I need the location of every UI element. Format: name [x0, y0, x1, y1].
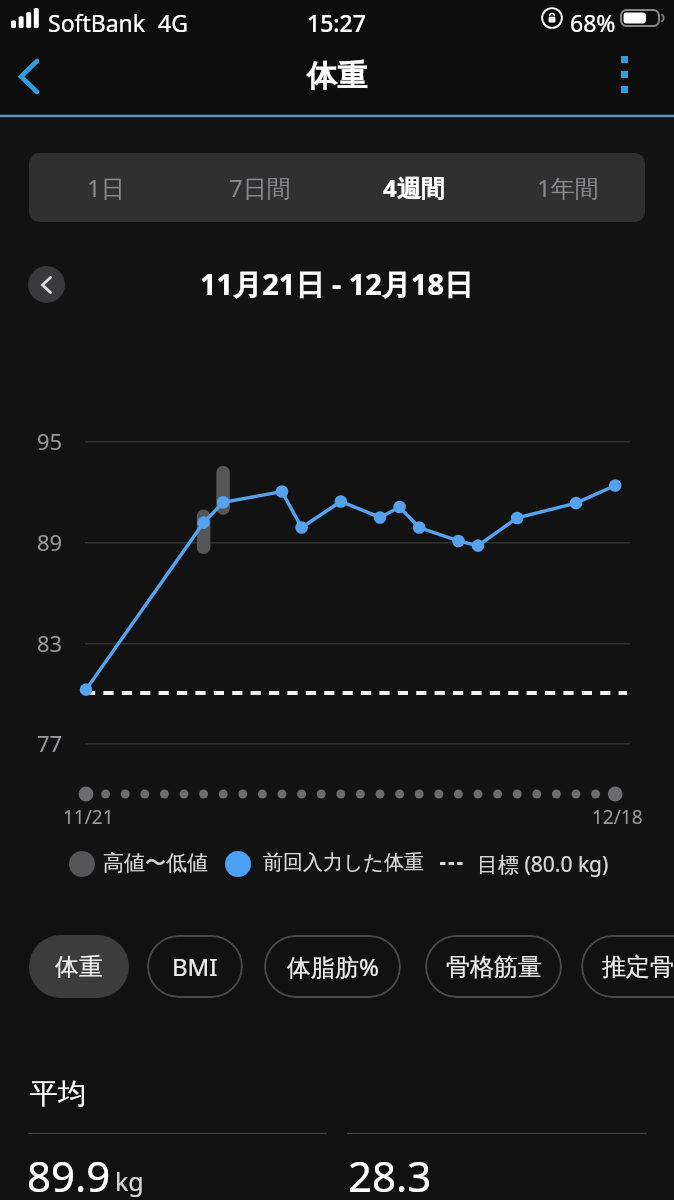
button[interactable]: 体重	[29, 935, 129, 998]
staticText: 体脂肪%	[287, 950, 379, 983]
staticText: 体重	[307, 57, 367, 95]
staticText: BMI	[172, 950, 218, 983]
staticText: 4G	[158, 7, 188, 38]
staticText: 11/21	[63, 804, 114, 830]
staticText: 骨格筋量	[446, 952, 542, 982]
staticText: 目標 (80.0 kg)	[477, 850, 609, 879]
staticText: 1日	[87, 171, 125, 204]
staticText: 12/18	[592, 804, 643, 830]
button[interactable]: Previous period	[28, 266, 65, 303]
staticText: kg	[115, 1164, 144, 1198]
staticText: 89.9	[27, 1147, 111, 1200]
staticText: 高値〜低値	[103, 850, 208, 876]
staticText: 平均	[30, 1076, 86, 1111]
button[interactable]: 1日	[29, 153, 183, 222]
button[interactable]: More options	[595, 45, 653, 103]
staticText: 83	[37, 628, 63, 658]
button[interactable]: 推定骨量	[581, 935, 674, 998]
staticText: 推定骨量	[602, 952, 674, 982]
staticText: 11月21日 - 12月18日	[200, 264, 474, 304]
button[interactable]: 体脂肪%	[264, 935, 401, 998]
staticText: 68%	[570, 7, 616, 38]
staticText: 体重	[55, 952, 103, 982]
button[interactable]: BMI	[147, 935, 243, 998]
staticText: 28.3	[348, 1147, 432, 1200]
button[interactable]: Back	[0, 47, 58, 105]
staticText: SoftBank	[48, 7, 146, 38]
button[interactable]: 骨格筋量	[425, 935, 562, 998]
staticText: 89	[37, 527, 63, 557]
button[interactable]: 1年間	[491, 153, 645, 222]
staticText: 1年間	[537, 171, 599, 204]
staticText: 77	[37, 728, 63, 758]
staticText: 前回入力した体重	[263, 850, 424, 875]
button[interactable]: 4週間	[337, 153, 491, 222]
staticText: 15:27	[307, 7, 366, 38]
staticText: 95	[37, 426, 63, 456]
button[interactable]: 7日間	[183, 153, 337, 222]
staticText: 4週間	[383, 171, 445, 204]
staticText: 7日間	[229, 171, 291, 204]
